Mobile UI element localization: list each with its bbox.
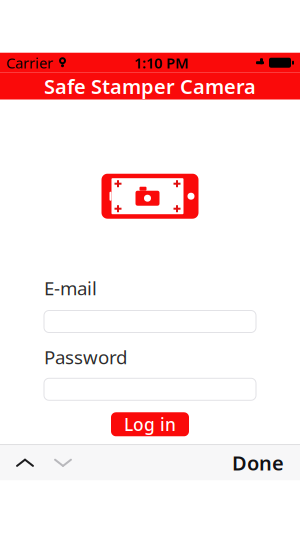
button[interactable]: Log in (111, 412, 189, 436)
staticText: E-mail (44, 276, 97, 300)
staticText: 1:10 PM (134, 53, 189, 72)
staticText: Done (232, 449, 284, 476)
staticText: Log in (124, 413, 176, 436)
staticText: Carrier (6, 53, 53, 72)
staticText: Password (44, 344, 127, 369)
button[interactable]: Next field (44, 445, 82, 480)
staticText: Safe Stamper Camera (44, 73, 256, 99)
button[interactable]: Done (222, 445, 294, 480)
button[interactable]: Previous field (6, 445, 44, 480)
